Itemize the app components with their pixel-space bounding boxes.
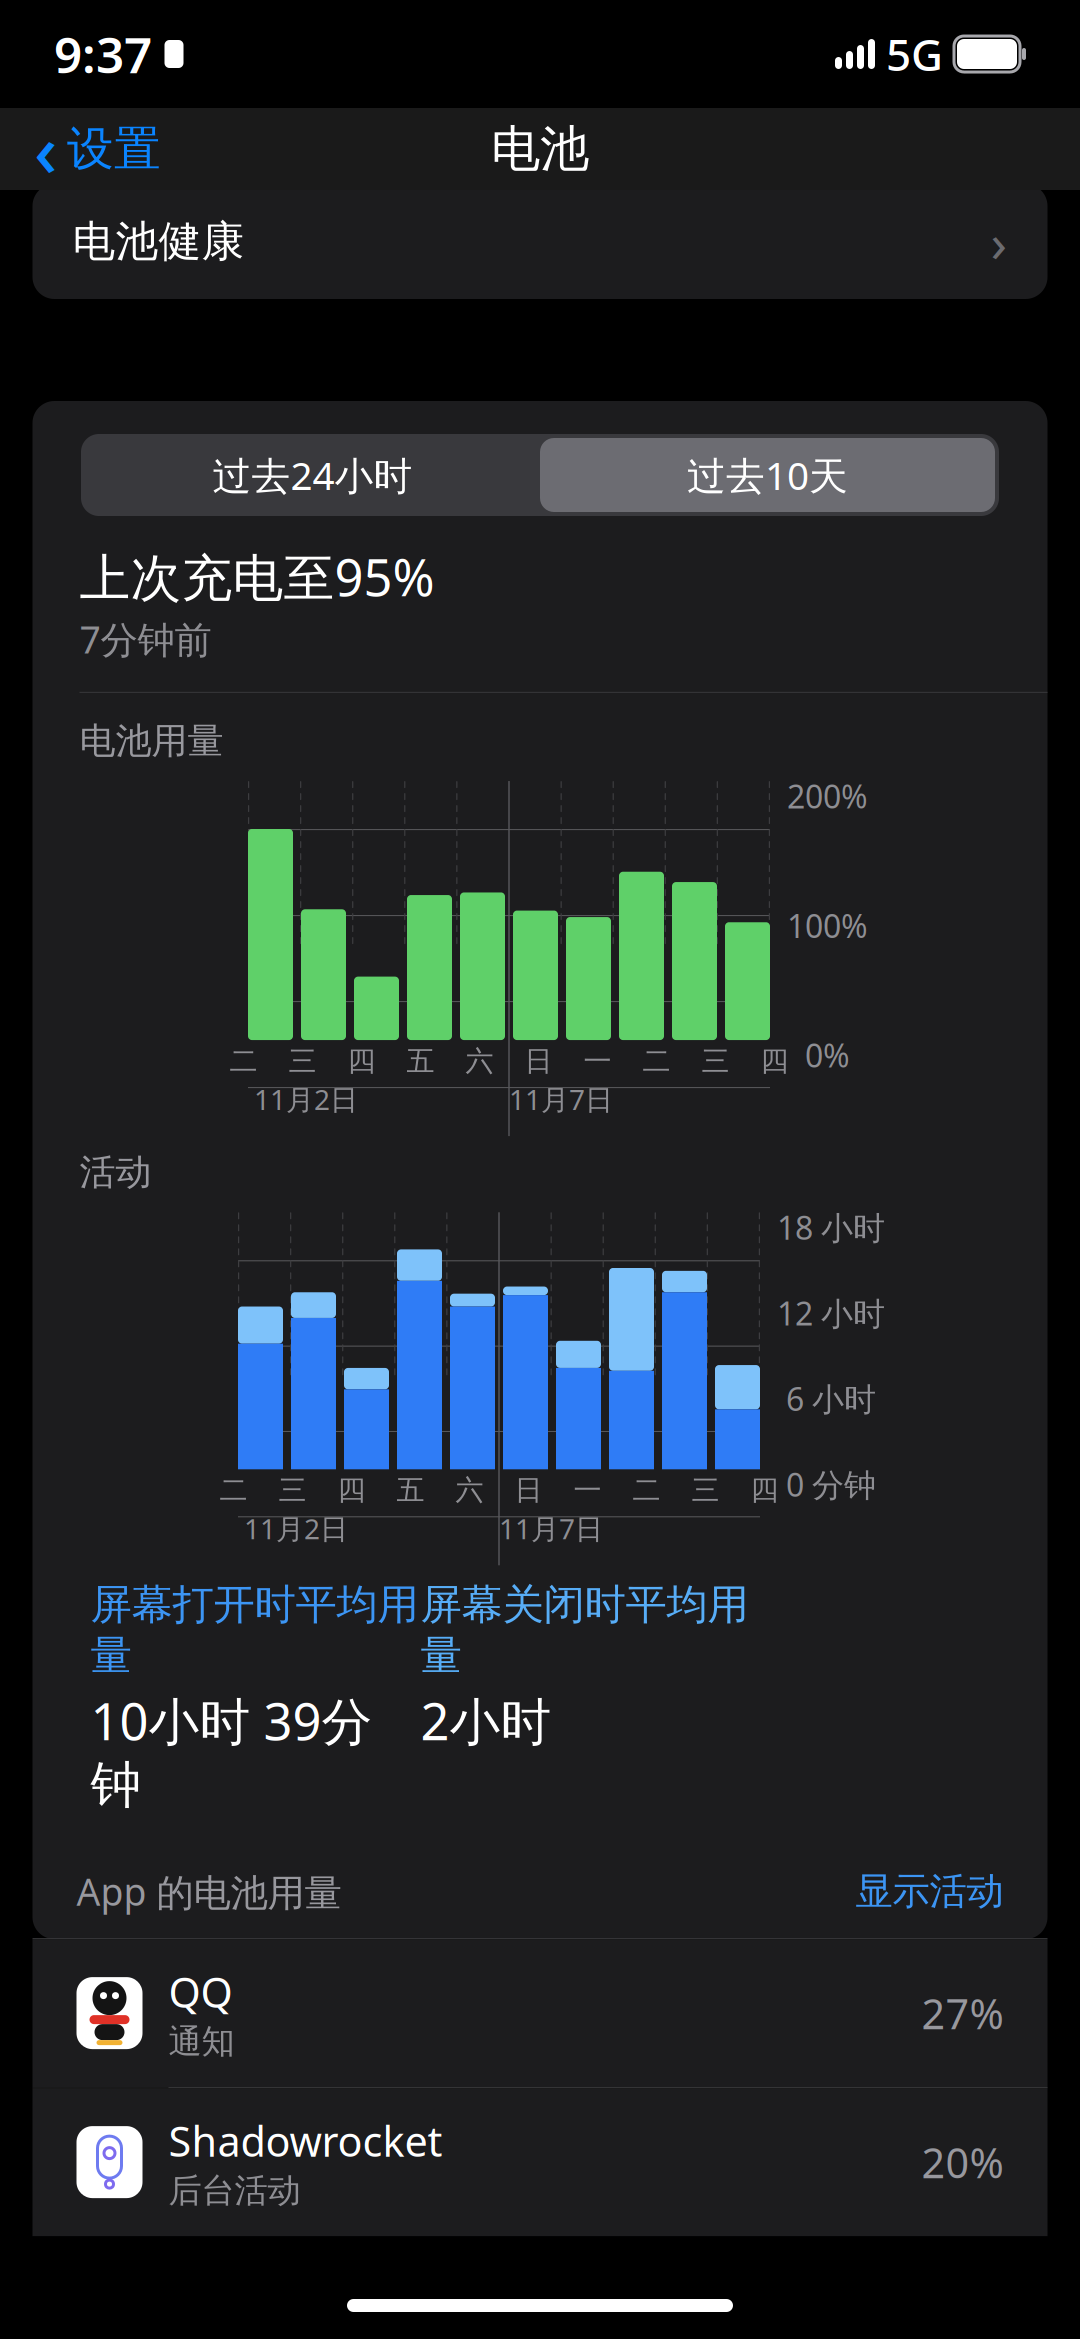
staticText: 11月7日 <box>499 1510 603 1547</box>
staticText: App 的电池用量 <box>76 1866 341 1916</box>
staticText: 四 <box>337 1473 365 1507</box>
staticText: 11月2日 <box>254 1080 358 1118</box>
staticText: 上次充电至95% <box>79 543 434 610</box>
staticText: 一 <box>573 1473 601 1507</box>
staticText: 日 <box>514 1473 542 1507</box>
staticText: 六 <box>455 1473 483 1507</box>
staticText: 100% <box>787 904 868 947</box>
staticText: 三 <box>691 1473 719 1507</box>
staticText: 27% <box>921 1986 1003 2041</box>
staticText: 电池健康 <box>72 215 244 268</box>
staticText: 二 <box>229 1044 257 1078</box>
staticText: 电池用量 <box>79 719 223 763</box>
staticText: 200% <box>787 775 868 817</box>
staticText: 20% <box>921 2135 1003 2190</box>
staticText: 五 <box>406 1044 434 1078</box>
staticText: 过去10天 <box>687 449 848 501</box>
staticText: 一 <box>583 1044 611 1078</box>
staticText: 二 <box>632 1473 660 1507</box>
staticText: 18 小时 <box>777 1206 885 1248</box>
button[interactable]: ‹ <box>26 114 169 184</box>
staticText: 日 <box>524 1044 552 1078</box>
button[interactable]: 屏幕打开时平均用量 <box>90 1579 418 1681</box>
staticText: 屏幕关闭时平均用量 <box>420 1579 748 1681</box>
staticText: 二 <box>219 1473 247 1507</box>
staticText: 显示活动 <box>855 1868 1003 1914</box>
staticText: 0 分钟 <box>786 1463 876 1505</box>
staticText: 过去24小时 <box>212 449 412 501</box>
button[interactable]: 过去10天 <box>540 438 995 512</box>
button[interactable]: 显示活动 <box>855 1868 1003 1914</box>
staticText: 四 <box>347 1044 375 1078</box>
staticText: 二 <box>642 1044 670 1078</box>
staticText: 10小时 39分钟 <box>90 1687 372 1816</box>
button[interactable]: 电池健康 <box>32 184 1047 299</box>
button[interactable]: 屏幕关闭时平均用量 <box>420 1579 748 1681</box>
staticText: 11月2日 <box>244 1510 348 1547</box>
staticText: 后台活动 <box>168 2170 300 2211</box>
staticText: 设置 <box>67 120 161 178</box>
staticText: 9:37 <box>54 21 152 87</box>
staticText: ‹ <box>34 101 57 197</box>
staticText: 通知 <box>168 2021 234 2062</box>
button[interactable]: 过去24小时 <box>85 438 540 512</box>
staticText: 7分钟前 <box>79 614 211 664</box>
staticText: 三 <box>701 1044 729 1078</box>
button[interactable]: QQ <box>32 1939 1047 2087</box>
staticText: 屏幕打开时平均用量 <box>90 1579 418 1681</box>
staticText: › <box>990 206 1007 277</box>
staticText: 12 小时 <box>777 1292 885 1334</box>
staticText: 三 <box>288 1044 316 1078</box>
staticText: 活动 <box>79 1150 151 1194</box>
staticText: QQ <box>168 1964 232 2019</box>
staticText: 2小时 <box>420 1687 551 1754</box>
staticText: 三 <box>278 1473 306 1507</box>
staticText: 四 <box>760 1044 788 1078</box>
staticText: 六 <box>465 1044 493 1078</box>
staticText: 5G <box>886 25 943 83</box>
staticText: 四 <box>750 1473 778 1507</box>
staticText: 6 小时 <box>786 1377 876 1420</box>
staticText: 11月7日 <box>509 1080 613 1118</box>
staticText: 电池 <box>491 119 589 179</box>
staticText: 五 <box>396 1473 424 1507</box>
staticText: Shadowrocket <box>168 2113 442 2168</box>
button[interactable]: Shadowrocket <box>32 2088 1047 2236</box>
staticText: 0% <box>805 1034 850 1076</box>
